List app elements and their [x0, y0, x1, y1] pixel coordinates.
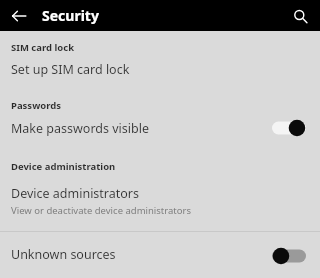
button[interactable]: Make passwords visible [0, 112, 320, 144]
staticText: Security [42, 6, 99, 25]
staticText: Make passwords visible [11, 120, 149, 137]
staticText: Device administrators [11, 185, 140, 202]
button[interactable]: Set up SIM card lock [0, 54, 320, 84]
button[interactable]: Back [8, 5, 30, 27]
staticText: Set up SIM card lock [11, 61, 130, 78]
button[interactable]: Device administrators [0, 173, 320, 227]
staticText: Passwords [11, 99, 62, 112]
button[interactable]: Unknown sources [0, 232, 320, 278]
staticText: View or deactivate device administrators [11, 204, 191, 217]
staticText: Device administration [11, 160, 116, 173]
staticText: SIM card lock [11, 41, 75, 54]
staticText: Unknown sources [11, 246, 116, 263]
button[interactable]: Search [289, 5, 311, 27]
